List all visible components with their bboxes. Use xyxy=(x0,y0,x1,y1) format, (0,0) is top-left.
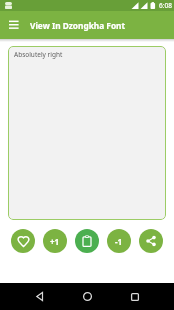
staticText: View In Dzongkha Font xyxy=(30,20,126,31)
button[interactable]: +1 xyxy=(43,229,67,253)
button[interactable] xyxy=(27,283,54,310)
button[interactable] xyxy=(11,229,35,253)
button[interactable] xyxy=(75,229,99,253)
button[interactable] xyxy=(139,229,163,253)
button[interactable] xyxy=(74,283,101,310)
button[interactable]: -1 xyxy=(107,229,131,253)
staticText: Absolutely right xyxy=(14,50,63,59)
staticText: +1 xyxy=(50,236,60,247)
button[interactable]: Absolutely right xyxy=(8,46,166,220)
staticText: 6:08 xyxy=(159,1,172,10)
button[interactable] xyxy=(121,283,148,310)
button[interactable] xyxy=(0,11,28,39)
staticText: -1 xyxy=(115,236,123,247)
